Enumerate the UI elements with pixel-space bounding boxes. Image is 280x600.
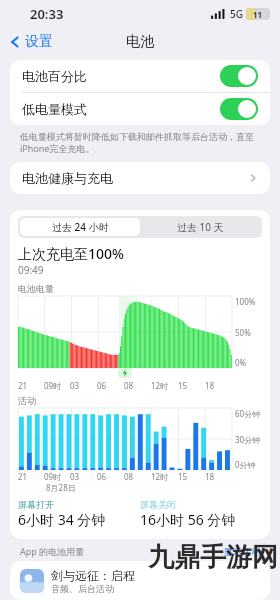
staticText: App 的电池用量 (20, 545, 85, 557)
staticText: 九鼎手游网 (148, 541, 278, 574)
staticText: 09时 (44, 380, 62, 391)
staticText: 21 (18, 380, 28, 391)
staticText: 03 (70, 471, 80, 482)
staticText: 低电量模式 (22, 101, 87, 117)
staticText: 09时 (44, 471, 62, 482)
staticText: 03 (70, 380, 80, 391)
staticText: 12时 (151, 380, 169, 391)
staticText: 06 (97, 471, 107, 482)
button[interactable]: 过去 10 天 (140, 218, 260, 236)
staticText: 过去 24 小时 (52, 220, 109, 234)
staticText: 6小时 34 分钟 (18, 510, 106, 529)
staticText: 电池百分比 (22, 68, 87, 84)
staticText: 08 (124, 380, 134, 391)
staticText: 09:49 (18, 263, 44, 277)
staticText: 06 (97, 380, 107, 391)
button[interactable]: 电池百分比 (10, 60, 270, 92)
button[interactable]: 低电量模式 (10, 93, 270, 125)
staticText: 剑与远征：启程 (51, 568, 135, 583)
staticText: 08 (124, 471, 134, 482)
button[interactable]: 设置 (8, 33, 53, 51)
staticText: iPhone完全充电。 (20, 142, 95, 154)
staticText: 30分钟 (235, 434, 261, 445)
staticText: 低电量模式将暂时降低如下载和邮件抓取等后台活动，直至 (20, 131, 254, 142)
staticText: 21 (18, 471, 28, 482)
staticText: 60分钟 (235, 408, 261, 419)
staticText: 5G (230, 7, 243, 21)
staticText: 音频、后台活动 (51, 583, 114, 594)
staticText: 50% (235, 327, 251, 338)
staticText: 18 (205, 471, 215, 482)
staticText: 18 (205, 380, 215, 391)
staticText: 0分钟 (235, 459, 256, 470)
button[interactable]: 电池健康与充电 (10, 162, 270, 194)
staticText: 活动 (18, 395, 36, 406)
staticText: 0% (235, 357, 247, 368)
staticText: 100% (235, 296, 256, 307)
staticText: 屏幕关闭 (140, 499, 176, 510)
button[interactable]: 剑与远征：启程 (10, 561, 270, 600)
staticText: 电池电量 (18, 283, 54, 294)
staticText: 电池 (126, 33, 154, 51)
staticText: 上次充电至100% (18, 244, 124, 263)
staticText: 设置 (25, 33, 53, 51)
staticText: 显示活动 (224, 546, 260, 557)
staticText: 20:33 (30, 5, 64, 23)
staticText: 16小时 56 分钟 (140, 510, 236, 529)
staticText: 屏幕打开 (18, 499, 54, 510)
button[interactable]: 过去 24 小时 (20, 218, 140, 236)
staticText: 15 (178, 471, 188, 482)
staticText: 11 (253, 9, 263, 20)
button[interactable]: 显示活动 (224, 546, 260, 557)
staticText: 12时 (151, 471, 169, 482)
staticText: 8月28日 (46, 482, 76, 493)
staticText: 电池健康与充电 (22, 170, 113, 186)
staticText: 过去 10 天 (177, 220, 224, 234)
staticText: 15 (178, 380, 188, 391)
